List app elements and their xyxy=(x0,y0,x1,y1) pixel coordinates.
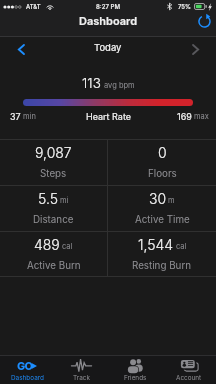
staticText: Today xyxy=(94,42,122,53)
staticText: Distance xyxy=(33,214,74,226)
staticText: Active Burn xyxy=(27,260,81,272)
button[interactable]: Previous day xyxy=(13,41,29,57)
staticText: Floors xyxy=(148,168,177,180)
staticText: Account xyxy=(176,374,202,382)
staticText: Resting Burn xyxy=(132,260,192,272)
staticText: 37 xyxy=(10,111,21,122)
staticText: min xyxy=(23,112,36,121)
staticText: max xyxy=(194,112,209,121)
staticText: GO xyxy=(17,359,32,372)
staticText: 8:27 PM xyxy=(96,3,121,10)
button[interactable]: 1,544 xyxy=(108,232,216,276)
button[interactable]: GO xyxy=(0,356,54,384)
staticText: 75% xyxy=(178,3,191,10)
button[interactable]: 9,087 xyxy=(0,140,107,185)
staticText: 489 xyxy=(34,236,60,253)
staticText: Active Time xyxy=(135,214,190,226)
button[interactable]: Friends xyxy=(108,356,162,384)
staticText: 113 xyxy=(82,75,101,91)
staticText: Friends xyxy=(124,374,147,382)
button[interactable]: 30 xyxy=(108,186,216,231)
staticText: 30 xyxy=(149,190,167,207)
button[interactable]: Account xyxy=(162,356,216,384)
staticText: AT&T xyxy=(26,3,41,10)
staticText: 9,087 xyxy=(35,144,72,161)
staticText: mi xyxy=(60,196,69,205)
staticText: 0 xyxy=(158,144,167,161)
button[interactable]: Track xyxy=(54,356,108,384)
button[interactable]: 5.5 xyxy=(0,186,107,231)
staticText: Steps xyxy=(40,168,67,180)
button[interactable]: Refresh xyxy=(195,11,213,29)
staticText: Dashboard xyxy=(11,374,44,382)
staticText: 5.5 xyxy=(38,190,58,207)
staticText: cal xyxy=(176,242,187,251)
staticText: avg bpm xyxy=(104,81,135,90)
staticText: 169 xyxy=(177,111,192,122)
staticText: Dashboard xyxy=(79,14,138,27)
button[interactable]: Next day xyxy=(187,41,203,57)
staticText: Track xyxy=(73,374,90,382)
staticText: m xyxy=(168,196,175,205)
staticText: 1,544 xyxy=(138,236,174,253)
button[interactable]: 489 xyxy=(0,232,107,276)
staticText: Heart Rate xyxy=(86,111,131,122)
staticText: cal xyxy=(62,242,73,251)
button[interactable]: 0 xyxy=(108,140,216,185)
